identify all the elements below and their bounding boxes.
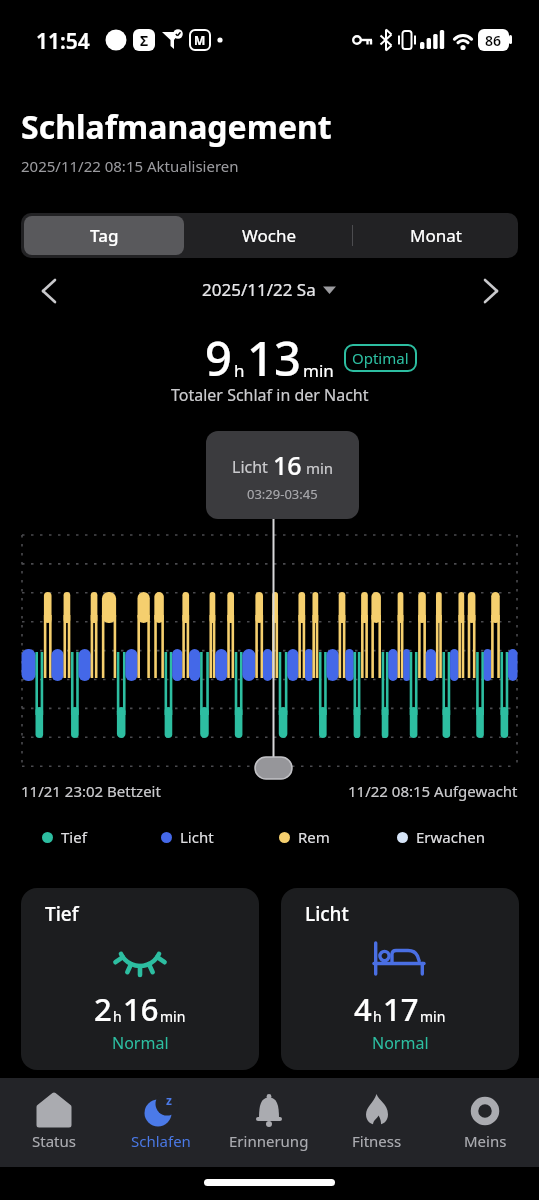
staticText: Schlafen — [131, 1131, 191, 1151]
staticText: Status — [32, 1131, 76, 1151]
staticText: Tief — [45, 901, 79, 927]
staticText: min — [420, 1007, 446, 1026]
button[interactable]: Erinnerung — [215, 1089, 323, 1163]
staticText: 86 — [485, 31, 502, 50]
staticText: Licht — [180, 827, 214, 847]
staticText: z — [166, 1092, 172, 1108]
button[interactable]: Optimal — [344, 344, 417, 372]
staticText: Fitness — [352, 1131, 402, 1151]
staticText: min — [302, 458, 334, 478]
button[interactable]: Fitness — [323, 1089, 431, 1163]
staticText: h — [113, 1007, 122, 1026]
staticText: Σ — [140, 31, 149, 50]
button[interactable]: z — [107, 1089, 215, 1163]
staticText: M — [194, 32, 206, 48]
button[interactable] — [474, 275, 506, 307]
staticText: 2025/11/22 08:15 Aktualisieren — [21, 156, 239, 176]
staticText: Licht — [232, 456, 273, 478]
staticText: h — [234, 359, 245, 382]
staticText: Meins — [464, 1131, 507, 1151]
staticText: min — [303, 359, 334, 382]
button[interactable]: Licht — [281, 888, 519, 1070]
button[interactable]: Monat — [353, 213, 518, 258]
button[interactable]: Tief — [21, 888, 259, 1070]
staticText: Woche — [242, 224, 297, 247]
staticText: 4 — [354, 988, 372, 1030]
staticText: 11/22 08:15 Aufgewacht — [348, 781, 518, 801]
staticText: 2 — [94, 988, 112, 1030]
staticText: 2025/11/22 Sa — [202, 278, 316, 301]
button[interactable]: 2025/11/22 Sa — [0, 278, 539, 301]
staticText: 11:54 — [36, 27, 90, 56]
staticText: 9 — [205, 326, 232, 390]
staticText: Normal — [112, 1032, 169, 1054]
button[interactable]: Status — [0, 1089, 107, 1163]
staticText: 03:29-03:45 — [247, 485, 318, 503]
staticText: Optimal — [352, 348, 409, 368]
staticText: h — [373, 1007, 382, 1026]
staticText: Erwachen — [416, 827, 485, 847]
staticText: 16 — [273, 448, 302, 482]
button[interactable] — [34, 275, 66, 307]
staticText: Tief — [61, 827, 87, 847]
staticText: Normal — [372, 1032, 429, 1054]
button[interactable]: Meins — [431, 1089, 539, 1163]
staticText: 13 — [247, 326, 301, 390]
staticText: Erinnerung — [229, 1131, 309, 1151]
staticText: Licht — [305, 901, 349, 927]
staticText: Monat — [410, 224, 462, 247]
staticText: Rem — [298, 827, 330, 847]
staticText: 16 — [123, 988, 159, 1030]
staticText: Schlafmanagement — [21, 105, 332, 149]
staticText: Tag — [90, 224, 119, 247]
button[interactable]: Woche — [187, 213, 352, 258]
staticText: 17 — [383, 988, 419, 1030]
staticText: 11/21 23:02 Bettzeit — [21, 781, 161, 801]
button[interactable]: Tag — [24, 216, 184, 255]
staticText: min — [160, 1007, 186, 1026]
staticText: Totaler Schlaf in der Nacht — [171, 384, 369, 406]
